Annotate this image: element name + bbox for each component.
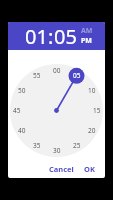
staticText: 25 (73, 141, 81, 150)
button[interactable]: 30 (53, 146, 61, 155)
staticText: 20 (88, 126, 96, 135)
button[interactable]: 55 (33, 71, 41, 80)
button[interactable]: Cancel (45, 161, 78, 177)
staticText: PM (81, 36, 92, 46)
button[interactable]: 10 (88, 86, 96, 95)
button[interactable]: PM (81, 36, 92, 46)
staticText: 10 (88, 86, 96, 95)
staticText: 55 (33, 71, 41, 80)
staticText: : (48, 23, 54, 50)
staticText: 00 (53, 66, 61, 75)
button[interactable]: 05 (54, 23, 77, 50)
button[interactable]: 35 (33, 141, 41, 150)
staticText: AM (81, 26, 93, 36)
staticText: Cancel (49, 164, 74, 174)
button[interactable]: 50 (18, 86, 26, 95)
button[interactable]: 00 (53, 66, 61, 75)
staticText: 45 (13, 106, 21, 115)
button[interactable]: 15 (93, 106, 101, 115)
button[interactable]: 20 (88, 126, 96, 135)
staticText: 05 (54, 23, 77, 50)
button[interactable]: 05 (73, 71, 81, 80)
button[interactable]: 01 (25, 23, 48, 50)
staticText: 30 (53, 146, 61, 155)
staticText: 40 (18, 126, 26, 135)
staticText: 15 (93, 106, 101, 115)
button[interactable]: 40 (18, 126, 26, 135)
button[interactable]: AM (81, 26, 93, 36)
button[interactable]: 45 (13, 106, 21, 115)
button[interactable]: 25 (73, 141, 81, 150)
staticText: 35 (33, 141, 41, 150)
staticText: 01 (25, 23, 48, 50)
staticText: 50 (18, 86, 26, 95)
staticText: OK (84, 164, 95, 174)
staticText: 05 (73, 71, 81, 80)
button[interactable]: OK (80, 161, 99, 177)
